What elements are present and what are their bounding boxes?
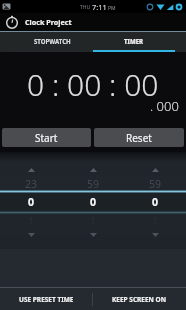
button[interactable]: KEEP SCREEN ON [93,288,186,310]
staticText: Reset [126,131,152,145]
staticText: PM [108,5,116,12]
staticText: STOPWATCH [34,37,71,45]
button[interactable]: Reset [94,128,184,147]
button[interactable]: STOPWATCH [11,32,93,52]
staticText: . 000 [150,97,179,115]
button[interactable]: Increment [90,168,97,172]
staticText: 0 : 00 : 00 [27,64,159,105]
staticText: TIMER [124,37,144,45]
staticText: 0 [28,195,35,209]
staticText: 59 [149,177,162,191]
staticText: THU [80,4,91,11]
staticText: USE PRESET TIME [19,295,74,304]
staticText: KEEP SCREEN ON [112,295,167,304]
staticText: 7:11 [92,2,107,12]
staticText: Clock Project [25,17,72,27]
button[interactable]: USE PRESET TIME [0,288,92,310]
staticText: Start [35,131,58,145]
button[interactable]: Increment [152,168,159,172]
staticText: 0 [90,195,97,209]
button[interactable]: Decrement [28,233,35,237]
button[interactable]: Increment [28,168,35,172]
staticText: 59 [87,177,100,191]
button[interactable]: TIMER [93,32,175,52]
button[interactable]: Decrement [152,233,159,237]
button[interactable]: Start [2,128,91,147]
button[interactable]: Decrement [90,233,97,237]
staticText: 23 [25,177,38,191]
staticText: 0 [152,195,159,209]
